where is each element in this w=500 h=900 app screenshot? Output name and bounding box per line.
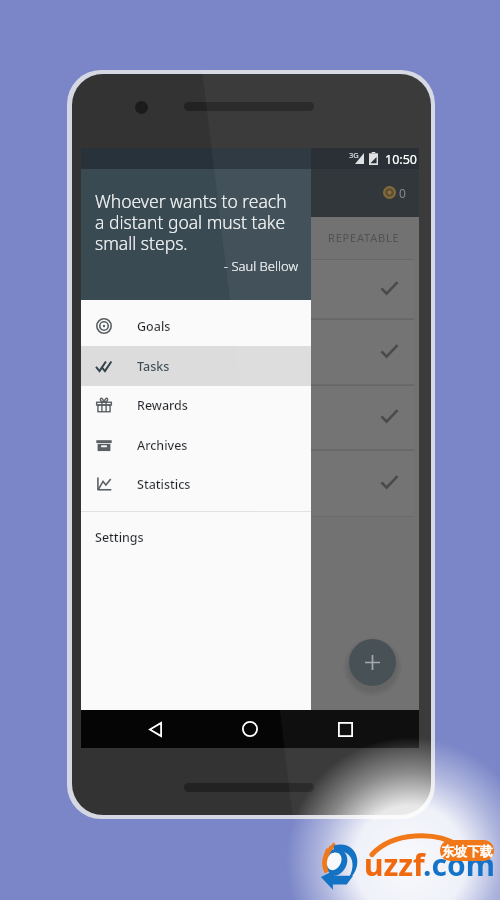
staticText: Goals (137, 318, 171, 335)
staticText: REPEATABLE (328, 230, 400, 245)
button[interactable] (81, 385, 414, 450)
button[interactable]: Home (230, 710, 270, 748)
staticText: uzzf (364, 844, 425, 885)
button[interactable]: Settings (81, 512, 311, 560)
staticText: Settings (95, 529, 144, 546)
button[interactable] (81, 319, 414, 385)
staticText: 0 (399, 185, 406, 201)
staticText: 10:50 (385, 151, 417, 168)
staticText: Whoever wants to reach a distant goal mu… (95, 189, 299, 255)
staticText: .com (423, 844, 495, 885)
staticText: 3G (349, 150, 359, 160)
button[interactable]: Goals (81, 306, 311, 346)
button[interactable]: Statistics (81, 464, 311, 504)
button[interactable]: Add (349, 639, 396, 686)
button[interactable]: Rewards (81, 385, 311, 425)
button[interactable]: Recent apps (325, 710, 365, 748)
staticText: - Saul Bellow (95, 257, 298, 275)
staticText: Rewards (137, 397, 188, 414)
button[interactable]: Archives (81, 425, 311, 465)
staticText: 东坡下载 (441, 843, 493, 859)
button[interactable] (81, 259, 414, 319)
button[interactable] (81, 450, 414, 517)
staticText: Tasks (137, 358, 170, 375)
button[interactable]: Back (135, 710, 175, 748)
staticText: Statistics (137, 476, 191, 493)
button[interactable]: Tasks (81, 346, 311, 386)
staticText: Archives (137, 437, 188, 454)
